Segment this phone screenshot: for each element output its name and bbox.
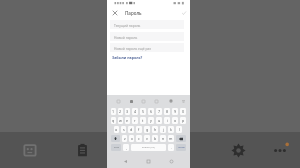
staticText: 6 bbox=[150, 109, 153, 114]
staticText: Забыли пароль? bbox=[112, 55, 143, 60]
button[interactable]: Новый пароль ещё раз bbox=[110, 43, 184, 52]
button[interactable]: a bbox=[114, 126, 119, 133]
button[interactable]: s bbox=[121, 126, 126, 133]
button[interactable]: c bbox=[136, 135, 142, 142]
staticText: y bbox=[150, 118, 152, 123]
button[interactable]: 5 bbox=[140, 108, 146, 115]
staticText: q bbox=[112, 118, 115, 123]
button[interactable]: ?123 bbox=[111, 144, 121, 151]
button[interactable]: o bbox=[172, 117, 178, 124]
staticText: Текущий пароль bbox=[114, 23, 141, 27]
staticText: b bbox=[154, 136, 157, 141]
staticText: f bbox=[138, 127, 140, 132]
button[interactable]: v bbox=[144, 135, 150, 142]
button[interactable]: Clipboard bbox=[74, 142, 91, 159]
staticText: x bbox=[131, 136, 133, 141]
staticText: m bbox=[169, 136, 173, 141]
staticText: 5 bbox=[142, 109, 145, 114]
button[interactable]: Toolbar item 2 bbox=[127, 97, 135, 105]
staticText: v bbox=[146, 136, 148, 141]
button[interactable]: Back bbox=[121, 157, 130, 166]
staticText: a bbox=[115, 127, 118, 132]
button[interactable]: t bbox=[140, 117, 146, 124]
button[interactable]: Shift bbox=[111, 135, 120, 142]
button[interactable]: i bbox=[164, 117, 170, 124]
button[interactable]: Recents bbox=[167, 157, 176, 166]
button[interactable]: h bbox=[152, 126, 158, 133]
staticText: ?123 bbox=[114, 146, 119, 149]
button[interactable]: . bbox=[168, 144, 174, 151]
button[interactable]: x bbox=[129, 135, 134, 142]
button[interactable]: r bbox=[132, 117, 138, 124]
button[interactable]: g bbox=[144, 126, 150, 133]
button[interactable]: Готово bbox=[176, 144, 186, 151]
button[interactable]: w bbox=[118, 117, 123, 124]
button[interactable]: Watermark bbox=[22, 142, 39, 159]
staticText: , bbox=[126, 146, 127, 150]
button[interactable]: Забыли пароль? bbox=[112, 55, 143, 60]
button[interactable]: Новый пароль bbox=[110, 32, 184, 41]
button[interactable]: j bbox=[160, 126, 166, 133]
staticText: s bbox=[123, 127, 125, 132]
staticText: 9 bbox=[174, 109, 177, 114]
button[interactable]: 7 bbox=[156, 108, 162, 115]
button[interactable]: Текущий пароль bbox=[110, 20, 184, 29]
button[interactable]: y bbox=[148, 117, 154, 124]
staticText: u bbox=[158, 118, 161, 123]
staticText: w bbox=[119, 118, 122, 123]
button[interactable]: 1 bbox=[111, 108, 116, 115]
staticText: d bbox=[130, 127, 133, 132]
button[interactable]: More options bbox=[270, 140, 290, 160]
button[interactable]: 0 bbox=[180, 108, 186, 115]
button[interactable]: Keyboard settings bbox=[167, 97, 175, 105]
button[interactable]: , bbox=[123, 144, 129, 151]
button[interactable]: 9 bbox=[172, 108, 178, 115]
staticText: c bbox=[138, 136, 140, 141]
staticText: . bbox=[171, 146, 172, 150]
button[interactable]: 6 bbox=[148, 108, 154, 115]
button[interactable]: 3 bbox=[125, 108, 130, 115]
staticText: Новый пароль bbox=[114, 35, 138, 39]
button[interactable]: k bbox=[168, 126, 174, 133]
button[interactable]: z bbox=[122, 135, 127, 142]
button[interactable]: Toolbar item 1 bbox=[114, 97, 122, 105]
button[interactable]: f bbox=[136, 126, 142, 133]
button[interactable]: p bbox=[180, 117, 186, 124]
staticText: g bbox=[146, 127, 149, 132]
button[interactable]: d bbox=[128, 126, 134, 133]
button[interactable]: u bbox=[156, 117, 162, 124]
staticText: n bbox=[162, 136, 165, 141]
button[interactable]: Settings bbox=[231, 143, 246, 158]
staticText: 1 bbox=[112, 109, 115, 114]
button[interactable]: 8 bbox=[164, 108, 170, 115]
button[interactable]: Backspace bbox=[176, 135, 186, 142]
button[interactable]: Toolbar item 3 bbox=[139, 97, 147, 105]
staticText: 7 bbox=[158, 109, 161, 114]
button[interactable]: Close bbox=[110, 8, 119, 17]
staticText: h bbox=[154, 127, 157, 132]
button[interactable]: n bbox=[160, 135, 166, 142]
button[interactable]: Toolbar item 4 bbox=[152, 97, 160, 105]
button[interactable]: Expand toolbar bbox=[179, 97, 187, 105]
staticText: r bbox=[134, 118, 136, 123]
staticText: k bbox=[170, 127, 172, 132]
staticText: Пароль bbox=[125, 10, 142, 16]
button[interactable]: l bbox=[176, 126, 182, 133]
staticText: Готово bbox=[178, 146, 185, 149]
staticText: Новый пароль ещё раз bbox=[114, 46, 151, 50]
staticText: j bbox=[163, 127, 164, 132]
button[interactable]: English (US) bbox=[131, 144, 166, 151]
button[interactable]: Home bbox=[144, 157, 153, 166]
staticText: English (US) bbox=[142, 146, 155, 149]
staticText: 0 bbox=[182, 109, 185, 114]
button[interactable]: 4 bbox=[132, 108, 138, 115]
button[interactable]: q bbox=[111, 117, 116, 124]
staticText: 8 bbox=[166, 109, 169, 114]
button[interactable]: b bbox=[152, 135, 158, 142]
button[interactable]: 2 bbox=[118, 108, 123, 115]
button[interactable]: e bbox=[125, 117, 130, 124]
button[interactable]: m bbox=[168, 135, 174, 142]
staticText: e bbox=[126, 118, 129, 123]
staticText: l bbox=[179, 127, 180, 132]
button[interactable]: Save bbox=[179, 8, 188, 17]
